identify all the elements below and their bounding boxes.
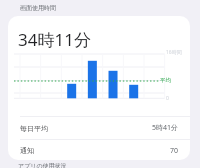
button[interactable]: 毎日平均 <box>8 117 190 139</box>
staticText: 70 <box>170 146 179 156</box>
staticText: 画面使用時間 <box>20 4 56 12</box>
staticText: 平均 <box>160 77 171 84</box>
staticText: 34時11分 <box>18 28 91 51</box>
staticText: 16時間 <box>166 49 182 56</box>
staticText: 0 <box>166 95 169 102</box>
staticText: 毎日平均 <box>20 124 48 133</box>
button[interactable]: 34時11分 <box>8 16 190 116</box>
staticText: アプリの使用状況 <box>18 162 67 168</box>
staticText: 5時41分 <box>152 123 179 133</box>
staticText: 通知 <box>20 146 34 155</box>
button[interactable]: 通知 <box>8 140 190 160</box>
